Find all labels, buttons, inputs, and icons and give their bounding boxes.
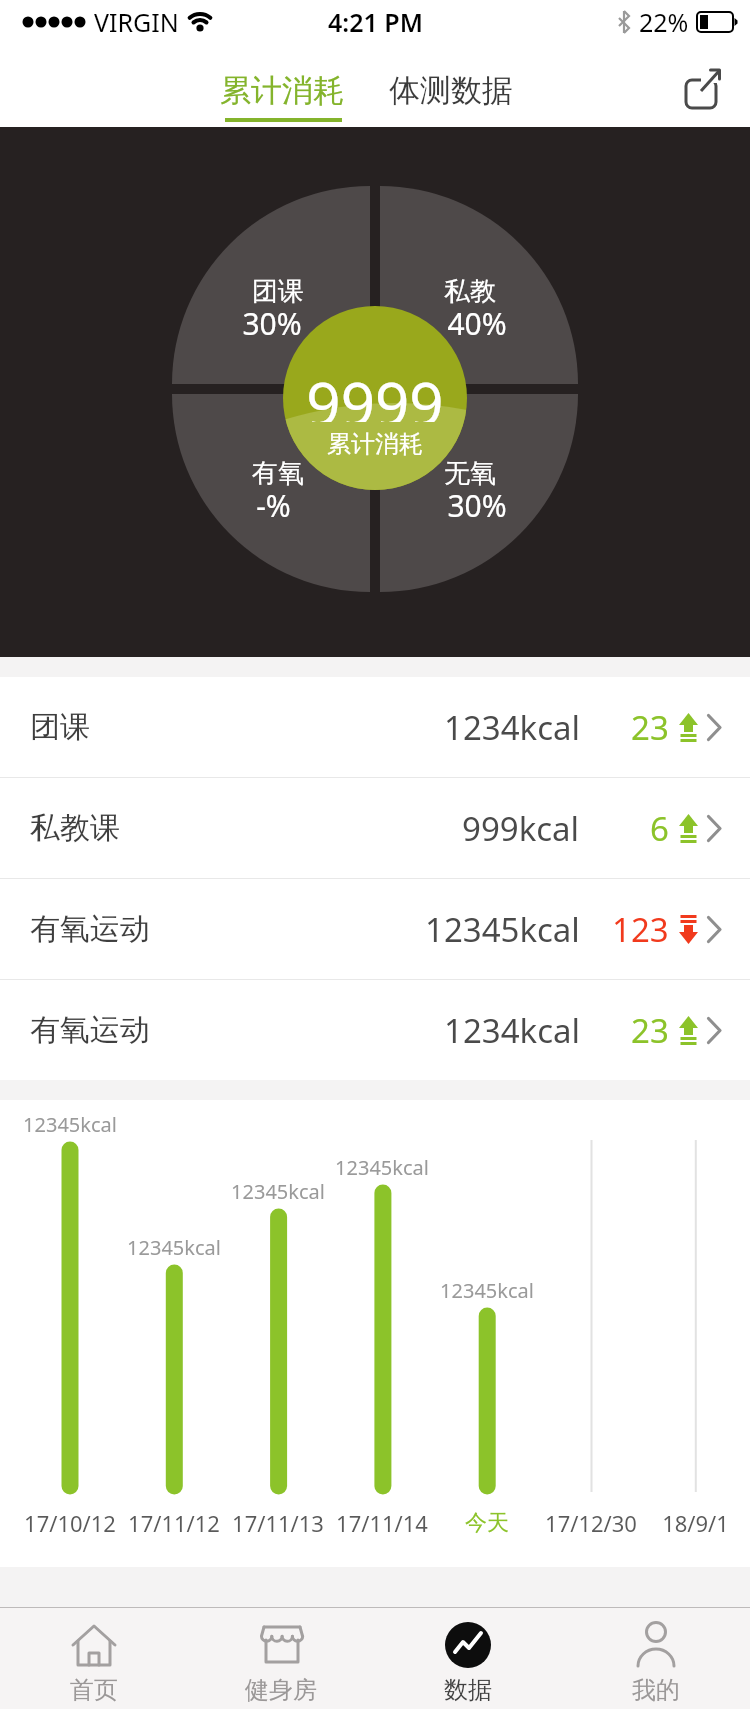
staticText: 首页 — [70, 1675, 118, 1705]
staticText: 17/11/13 — [232, 1508, 324, 1538]
staticText: 17/11/12 — [128, 1508, 220, 1538]
staticText: 4:21 PM — [328, 5, 423, 39]
staticText: 40% — [447, 303, 507, 344]
staticText: 9999 — [306, 362, 444, 422]
staticText: 18/9/1 — [662, 1508, 729, 1538]
button[interactable]: 有氧运动 — [0, 980, 750, 1080]
staticText: 累计消耗 — [220, 71, 344, 110]
staticText: 12345kcal — [231, 1178, 325, 1205]
button[interactable]: 累计消耗 — [212, 68, 352, 112]
staticText: -% — [256, 485, 291, 526]
staticText: 12345kcal — [23, 1111, 117, 1138]
staticText: 1234kcal — [444, 705, 580, 750]
button[interactable]: 健身房 — [187, 1608, 374, 1709]
button[interactable] — [684, 68, 728, 110]
button[interactable]: 有氧运动 — [0, 879, 750, 979]
staticText: 12345kcal — [440, 1277, 534, 1304]
staticText: 私教课 — [30, 809, 120, 847]
staticText: 17/11/14 — [336, 1508, 428, 1538]
button[interactable]: 我的 — [562, 1608, 750, 1709]
staticText: 累计消耗 — [327, 429, 423, 459]
staticText: 12345kcal — [425, 907, 580, 952]
button[interactable]: 首页 — [0, 1608, 187, 1709]
staticText: 今天 — [465, 1509, 509, 1537]
staticText: 团课 — [252, 275, 304, 308]
staticText: 有氧运动 — [30, 910, 150, 948]
staticText: 23 — [631, 705, 669, 750]
staticText: 123 — [612, 907, 669, 952]
staticText: 数据 — [444, 1675, 492, 1705]
staticText: 30% — [242, 303, 302, 344]
staticText: 无氧 — [444, 457, 496, 490]
staticText: 23 — [631, 1008, 669, 1053]
staticText: 团课 — [30, 708, 90, 746]
staticText: VIRGIN — [94, 5, 179, 39]
staticText: 体测数据 — [389, 71, 513, 110]
staticText: 12345kcal — [335, 1154, 429, 1181]
button[interactable]: 团课 — [0, 677, 750, 777]
staticText: 1234kcal — [444, 1008, 580, 1053]
button[interactable]: 私教课 — [0, 778, 750, 878]
staticText: 我的 — [632, 1675, 680, 1705]
staticText: 17/12/30 — [545, 1508, 637, 1538]
staticText: 私教 — [444, 275, 496, 308]
staticText: 6 — [650, 806, 669, 851]
button[interactable]: 数据 — [374, 1608, 562, 1709]
staticText: 健身房 — [245, 1675, 317, 1705]
staticText: 22% — [639, 5, 689, 39]
staticText: 有氧运动 — [30, 1011, 150, 1049]
staticText: 999kcal — [462, 806, 580, 851]
button[interactable]: 体测数据 — [381, 68, 521, 112]
staticText: 30% — [447, 485, 507, 526]
staticText: 有氧 — [252, 457, 304, 490]
staticText: 12345kcal — [127, 1234, 221, 1261]
staticText: 17/10/12 — [24, 1508, 116, 1538]
